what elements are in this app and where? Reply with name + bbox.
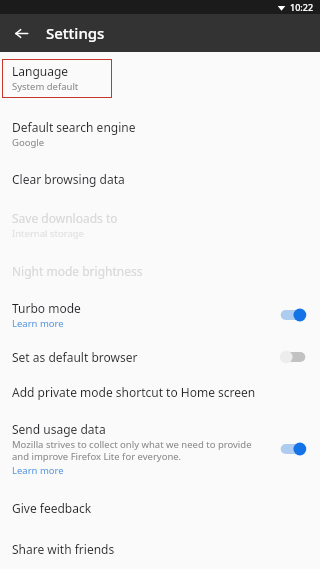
button[interactable]: Language bbox=[2, 59, 112, 98]
staticText: Google bbox=[12, 136, 45, 149]
button[interactable]: Share with friends bbox=[0, 540, 320, 558]
button[interactable]: Back bbox=[6, 18, 36, 48]
staticText: Learn more bbox=[12, 317, 64, 330]
staticText: System default bbox=[12, 80, 79, 93]
button[interactable]: Night mode brightness bbox=[0, 262, 320, 280]
button[interactable]: Save downloads to bbox=[0, 209, 320, 241]
staticText: Settings bbox=[46, 23, 105, 43]
button[interactable]: Clear browsing data bbox=[0, 170, 320, 188]
staticText: Internal storage bbox=[12, 227, 84, 240]
staticText: Mozilla strives to collect only what we … bbox=[12, 438, 270, 463]
staticText: Default search engine bbox=[12, 119, 136, 135]
button[interactable]: Default search engine bbox=[0, 118, 320, 150]
staticText: Share with friends bbox=[12, 541, 115, 557]
staticText: Send usage data bbox=[12, 421, 106, 437]
staticText: Add private mode shortcut to Home screen bbox=[12, 384, 256, 400]
button[interactable]: Set as default browser bbox=[0, 348, 320, 366]
staticText: Save downloads to bbox=[12, 210, 118, 226]
staticText: Language bbox=[12, 63, 69, 79]
staticText: Set as default browser bbox=[12, 349, 138, 365]
button[interactable]: Turbo mode bbox=[0, 299, 320, 331]
staticText: Learn more bbox=[12, 464, 64, 477]
staticText: Clear browsing data bbox=[12, 171, 125, 187]
staticText: Turbo mode bbox=[12, 300, 81, 316]
staticText: Give feedback bbox=[12, 500, 92, 516]
staticText: Night mode brightness bbox=[12, 263, 143, 279]
button[interactable]: Give feedback bbox=[0, 499, 320, 517]
staticText: 10:22 bbox=[290, 1, 314, 13]
button[interactable]: Send usage data bbox=[0, 420, 320, 478]
button[interactable]: Add private mode shortcut to Home screen bbox=[0, 383, 320, 401]
